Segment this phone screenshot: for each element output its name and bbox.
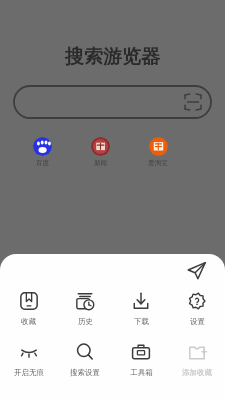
staticText: 设置 [190,317,205,326]
staticText: 添加收藏 [182,368,212,377]
staticText: 爱淘宝 [148,159,168,167]
button[interactable]: 添加收藏 [169,337,225,380]
staticText: 搜索游览器 [65,45,160,69]
staticText: 新闻 [94,159,107,167]
button[interactable]: 开启无痕 [0,337,57,380]
button[interactable]: 工具箱 [113,337,169,380]
staticText: 历史 [78,317,93,326]
staticText: 搜索设置 [70,368,100,377]
button[interactable]: 百度 [24,137,60,167]
button[interactable]: 新闻 [82,137,118,167]
staticText: 百度 [36,159,49,167]
button[interactable]: 爱淘宝 [140,137,176,167]
button[interactable]: 历史 [57,286,113,329]
staticText: 收藏 [21,317,36,326]
button[interactable]: 设置 [169,286,225,329]
staticText: 下载 [134,317,149,326]
staticText: 工具箱 [130,368,153,377]
button[interactable]: Scan code [185,94,201,110]
button[interactable]: 搜索设置 [57,337,113,380]
button[interactable]: Share [185,259,208,282]
button[interactable]: 下载 [113,286,169,329]
button[interactable]: Scan code [13,85,212,119]
button[interactable]: 收藏 [0,286,57,329]
staticText: 开启无痕 [14,368,44,377]
